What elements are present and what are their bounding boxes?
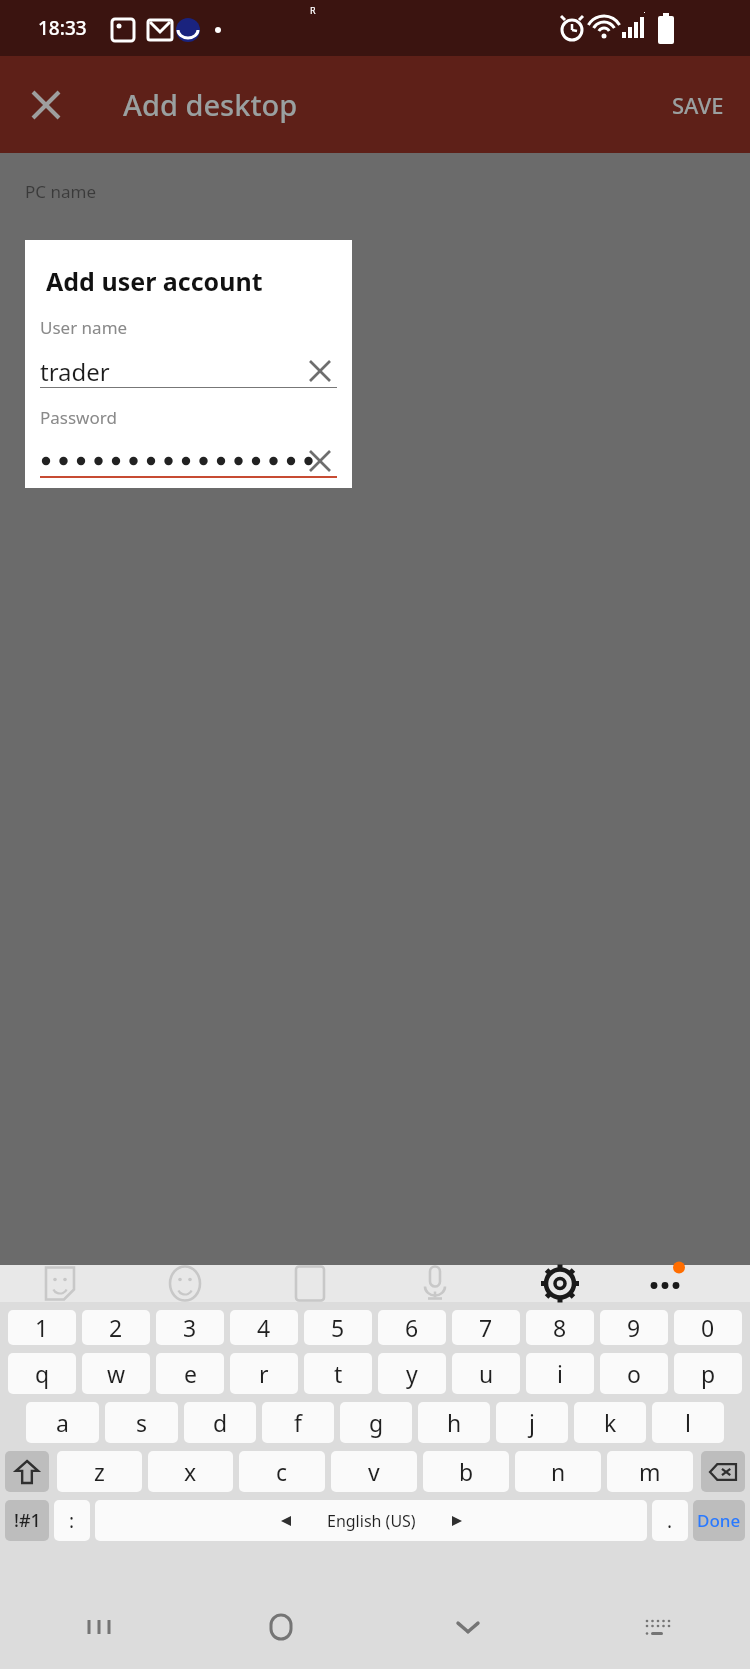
button[interactable]: i (526, 1353, 594, 1394)
button[interactable]: Period (652, 1500, 688, 1541)
button[interactable]: Clear (303, 444, 337, 478)
button[interactable]: Back (374, 1585, 562, 1669)
button[interactable]: n (515, 1451, 601, 1492)
staticText: n (551, 1456, 566, 1487)
button[interactable]: Close (20, 79, 72, 131)
staticText: . (667, 1508, 673, 1534)
button[interactable]: a (26, 1402, 99, 1443)
button[interactable]: 2 (82, 1310, 150, 1345)
button[interactable]: Recents (0, 1585, 187, 1669)
button[interactable]: SAVE (664, 82, 732, 128)
button[interactable]: d (184, 1402, 256, 1443)
button[interactable]: m (607, 1451, 693, 1492)
button[interactable]: w (82, 1353, 150, 1394)
staticText: R (310, 4, 316, 16)
staticText: z (94, 1456, 105, 1487)
staticText: q (35, 1358, 50, 1389)
staticText: s (136, 1407, 148, 1438)
staticText: p (701, 1358, 716, 1389)
button[interactable]: p (674, 1353, 742, 1394)
button[interactable]: Backspace (701, 1451, 745, 1492)
staticText: j (529, 1407, 535, 1438)
button[interactable]: e (156, 1353, 224, 1394)
button[interactable]: 1 (8, 1310, 76, 1345)
button[interactable]: Voice input (198, 1265, 258, 1302)
button[interactable]: z (57, 1451, 142, 1492)
staticText: b (459, 1456, 474, 1487)
staticText: 3 (183, 1312, 197, 1343)
button[interactable]: 7 (452, 1310, 520, 1345)
button[interactable]: v (331, 1451, 417, 1492)
button[interactable]: Colon (54, 1500, 90, 1541)
staticText: 4 (257, 1312, 271, 1343)
staticText: trader (40, 355, 110, 388)
staticText: l (685, 1407, 691, 1438)
staticText: m (639, 1456, 661, 1487)
staticText: 9 (627, 1312, 641, 1343)
staticText: e (184, 1358, 197, 1389)
staticText: a (56, 1407, 69, 1438)
staticText: t (334, 1358, 343, 1389)
button[interactable]: Emoji (66, 1265, 126, 1302)
staticText: 2 (109, 1312, 123, 1343)
button[interactable]: GIF (132, 1265, 192, 1302)
staticText: Done (697, 1509, 741, 1532)
button[interactable]: j (496, 1402, 568, 1443)
staticText: 18:33 (38, 15, 87, 41)
button[interactable]: s (105, 1402, 178, 1443)
staticText: PC name (25, 180, 96, 203)
staticText: Password (40, 406, 117, 429)
button[interactable]: 0 (674, 1310, 742, 1345)
button[interactable]: h (418, 1402, 490, 1443)
staticText: Add user account (46, 264, 263, 298)
button[interactable]: f (262, 1402, 334, 1443)
button[interactable]: x (148, 1451, 233, 1492)
staticText: 8 (553, 1312, 567, 1343)
staticText: x (184, 1456, 197, 1487)
staticText: 7 (479, 1312, 493, 1343)
button[interactable]: g (340, 1402, 412, 1443)
button[interactable]: b (423, 1451, 509, 1492)
button[interactable]: Hide keyboard (562, 1585, 750, 1669)
button[interactable]: English (US) (95, 1500, 647, 1541)
button[interactable]: Sticker (18, 1265, 78, 1302)
staticText: g (369, 1407, 384, 1438)
staticText: w (107, 1358, 126, 1389)
button[interactable]: y (378, 1353, 446, 1394)
button[interactable]: 5 (304, 1310, 372, 1345)
staticText: y (406, 1358, 418, 1389)
staticText: 0 (701, 1312, 715, 1343)
button[interactable]: l (652, 1402, 724, 1443)
button[interactable]: r (230, 1353, 298, 1394)
button[interactable]: 9 (600, 1310, 668, 1345)
staticText: i (557, 1358, 563, 1389)
button[interactable]: Done (693, 1500, 745, 1541)
button[interactable]: k (574, 1402, 646, 1443)
staticText: SAVE (672, 90, 724, 120)
button[interactable]: q (8, 1353, 76, 1394)
staticText: 5 (331, 1312, 345, 1343)
button[interactable]: Shift (5, 1451, 49, 1492)
button[interactable]: Home (187, 1585, 374, 1669)
button[interactable]: 6 (378, 1310, 446, 1345)
staticText: c (276, 1456, 288, 1487)
button[interactable]: u (452, 1353, 520, 1394)
button[interactable]: Settings (264, 1265, 324, 1302)
staticText: u (479, 1358, 494, 1389)
staticText: English (US) (327, 1510, 416, 1532)
button[interactable]: Clear (303, 354, 337, 388)
staticText: r (259, 1358, 269, 1389)
staticText: Add desktop (123, 85, 298, 124)
button[interactable]: c (239, 1451, 325, 1492)
button[interactable]: 3 (156, 1310, 224, 1345)
button[interactable]: 8 (526, 1310, 594, 1345)
staticText: k (604, 1407, 617, 1438)
button[interactable]: o (600, 1353, 668, 1394)
button[interactable]: Symbols (5, 1500, 49, 1541)
staticText: !#1 (14, 1508, 41, 1533)
staticText: o (627, 1358, 641, 1389)
button[interactable]: 4 (230, 1310, 298, 1345)
staticText: : (69, 1508, 75, 1534)
button[interactable]: t (304, 1353, 372, 1394)
